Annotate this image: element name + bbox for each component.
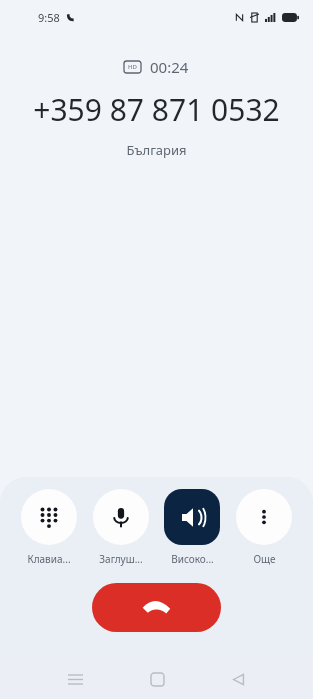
button[interactable]: Home	[140, 662, 174, 696]
button[interactable]: Recent apps	[58, 662, 92, 696]
staticText: Клавиа...	[27, 552, 71, 566]
staticText: 9:58	[38, 10, 60, 25]
staticText: 00:24	[150, 57, 189, 77]
staticText: +359 87 871 0532	[0, 89, 313, 130]
button[interactable]: Mute	[90, 489, 152, 566]
button[interactable]: Keypad	[18, 489, 80, 566]
button[interactable]: Back	[221, 662, 255, 696]
button[interactable]: More options	[233, 489, 295, 566]
button[interactable]: Speaker	[161, 489, 223, 566]
staticText: Заглуш...	[99, 552, 143, 566]
staticText: Високо...	[171, 552, 214, 566]
staticText: Още	[253, 552, 276, 566]
staticText: HD	[128, 63, 137, 71]
staticText: България	[0, 141, 313, 159]
button[interactable]: End call	[92, 583, 221, 632]
